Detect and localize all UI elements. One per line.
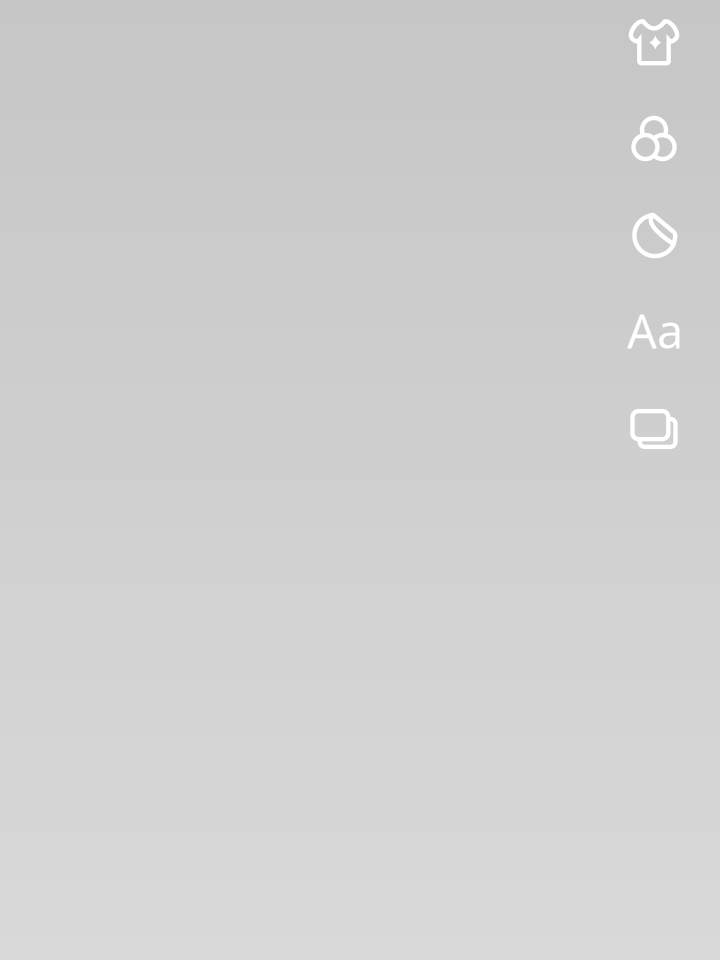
staticText: Aa bbox=[627, 299, 683, 361]
button[interactable]: Text bbox=[622, 300, 686, 364]
button[interactable]: Colors bbox=[622, 106, 686, 170]
button[interactable]: Stickers bbox=[623, 203, 687, 267]
button[interactable]: Style bbox=[622, 10, 686, 74]
button[interactable]: Layers bbox=[622, 397, 686, 461]
